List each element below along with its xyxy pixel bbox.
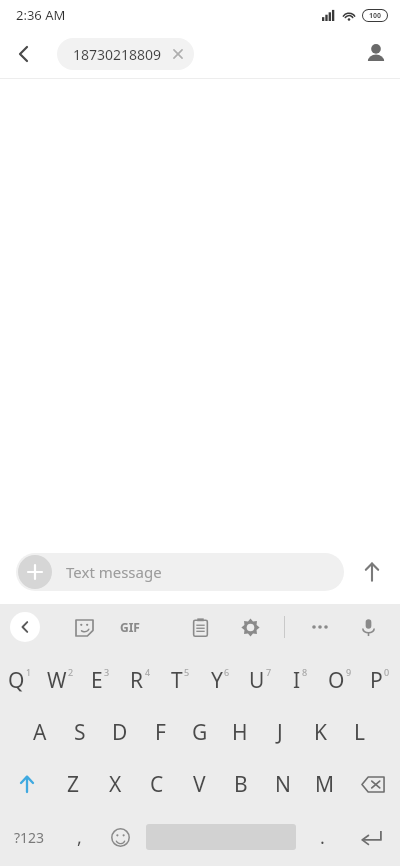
button[interactable]: R bbox=[120, 654, 160, 706]
button[interactable]: P bbox=[360, 654, 400, 706]
button[interactable]: E bbox=[80, 654, 120, 706]
staticText: W bbox=[47, 666, 67, 695]
button[interactable]: S bbox=[60, 706, 100, 758]
button[interactable]: 18730218809 bbox=[57, 38, 194, 70]
button[interactable]: GIF bbox=[120, 619, 140, 635]
staticText: V bbox=[193, 770, 206, 799]
staticText: K bbox=[314, 718, 327, 747]
staticText: F bbox=[155, 718, 166, 747]
button[interactable]: Attach bbox=[18, 555, 52, 589]
staticText: Text message bbox=[66, 562, 162, 582]
staticText: E bbox=[91, 666, 103, 695]
button[interactable]: Emoji bbox=[100, 810, 140, 864]
button[interactable]: X bbox=[94, 758, 136, 810]
staticText: D bbox=[112, 718, 128, 747]
staticText: A bbox=[33, 718, 47, 747]
staticText: P bbox=[370, 666, 383, 695]
staticText: M bbox=[315, 770, 335, 799]
staticText: S bbox=[74, 718, 86, 747]
button[interactable]: Backspace bbox=[346, 758, 400, 810]
button[interactable]: B bbox=[220, 758, 262, 810]
staticText: . bbox=[320, 825, 325, 850]
staticText: H bbox=[232, 718, 248, 747]
staticText: U bbox=[249, 666, 265, 695]
staticText: I bbox=[293, 666, 301, 695]
button[interactable]: More options bbox=[300, 607, 340, 647]
button[interactable]: C bbox=[136, 758, 178, 810]
staticText: 3 bbox=[104, 666, 110, 678]
staticText: X bbox=[109, 770, 122, 799]
button[interactable]: O bbox=[320, 654, 360, 706]
staticText: J bbox=[277, 718, 283, 747]
button[interactable]: . bbox=[302, 810, 342, 864]
staticText: 2 bbox=[68, 666, 74, 678]
button[interactable]: Shift bbox=[0, 758, 53, 810]
button[interactable]: Contact bbox=[352, 30, 400, 78]
button[interactable]: Stickers bbox=[64, 607, 104, 647]
button[interactable]: Send bbox=[344, 544, 400, 600]
button[interactable]: K bbox=[300, 706, 340, 758]
staticText: B bbox=[234, 770, 248, 799]
button[interactable]: U bbox=[240, 654, 280, 706]
button[interactable]: Z bbox=[53, 758, 94, 810]
button[interactable]: L bbox=[340, 706, 380, 758]
button[interactable]: D bbox=[100, 706, 140, 758]
staticText: 18730218809 bbox=[73, 45, 162, 64]
staticText: Z bbox=[67, 770, 80, 799]
button[interactable]: Clipboard bbox=[180, 607, 220, 647]
button[interactable]: Back bbox=[0, 30, 48, 78]
button[interactable]: , bbox=[59, 810, 100, 864]
staticText: 1 bbox=[26, 666, 32, 678]
staticText: N bbox=[275, 770, 291, 799]
button[interactable]: Enter bbox=[342, 810, 400, 864]
button[interactable]: J bbox=[260, 706, 300, 758]
staticText: ?123 bbox=[14, 828, 45, 847]
button[interactable]: N bbox=[262, 758, 304, 810]
button[interactable]: F bbox=[140, 706, 180, 758]
staticText: R bbox=[130, 666, 144, 695]
staticText: 9 bbox=[346, 666, 352, 678]
button[interactable]: H bbox=[220, 706, 260, 758]
staticText: 6 bbox=[224, 666, 230, 678]
staticText: Y bbox=[211, 666, 223, 695]
staticText: T bbox=[171, 666, 183, 695]
button[interactable]: I bbox=[280, 654, 320, 706]
staticText: O bbox=[328, 666, 345, 695]
staticText: 100 bbox=[369, 11, 382, 21]
button[interactable]: A bbox=[20, 706, 60, 758]
staticText: 2:36 AM bbox=[16, 6, 66, 24]
staticText: 0 bbox=[384, 666, 390, 678]
button[interactable]: Settings bbox=[230, 607, 270, 647]
staticText: Q bbox=[8, 666, 25, 695]
button[interactable]: T bbox=[160, 654, 200, 706]
staticText: C bbox=[150, 770, 164, 799]
staticText: L bbox=[354, 718, 366, 747]
button[interactable]: Collapse toolbar bbox=[10, 612, 40, 642]
button[interactable]: G bbox=[180, 706, 220, 758]
staticText: G bbox=[192, 718, 208, 747]
staticText: 5 bbox=[184, 666, 190, 678]
staticText: , bbox=[77, 825, 82, 850]
button[interactable]: Y bbox=[200, 654, 240, 706]
staticText: 8 bbox=[302, 666, 308, 678]
button[interactable]: Voice input bbox=[348, 607, 388, 647]
button[interactable]: ?123 bbox=[0, 810, 59, 864]
button[interactable]: W bbox=[40, 654, 80, 706]
button[interactable]: M bbox=[304, 758, 346, 810]
button[interactable]: Q bbox=[0, 654, 40, 706]
staticText: 4 bbox=[145, 666, 151, 678]
button[interactable]: Attach bbox=[16, 553, 344, 591]
staticText: 7 bbox=[266, 666, 272, 678]
button[interactable]: V bbox=[178, 758, 220, 810]
